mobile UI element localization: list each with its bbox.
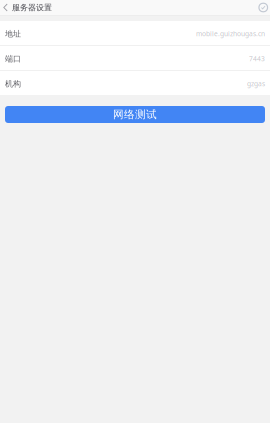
- staticText: 地址: [5, 29, 21, 39]
- button[interactable]: 保存: [258, 0, 270, 15]
- staticText: 端口: [5, 54, 21, 64]
- staticText: 7443: [249, 54, 265, 63]
- button[interactable]: 机构: [0, 71, 270, 95]
- staticText: 网络测试: [113, 108, 157, 121]
- staticText: mobile.guizhougas.cn: [196, 29, 265, 38]
- button[interactable]: 地址: [0, 21, 270, 45]
- button[interactable]: 返回 服务器设置: [0, 0, 56, 15]
- staticText: 机构: [5, 79, 21, 89]
- button[interactable]: 端口: [0, 46, 270, 70]
- staticText: 服务器设置: [12, 3, 52, 12]
- button[interactable]: 网络测试: [5, 106, 265, 123]
- staticText: gzgas: [247, 79, 265, 88]
